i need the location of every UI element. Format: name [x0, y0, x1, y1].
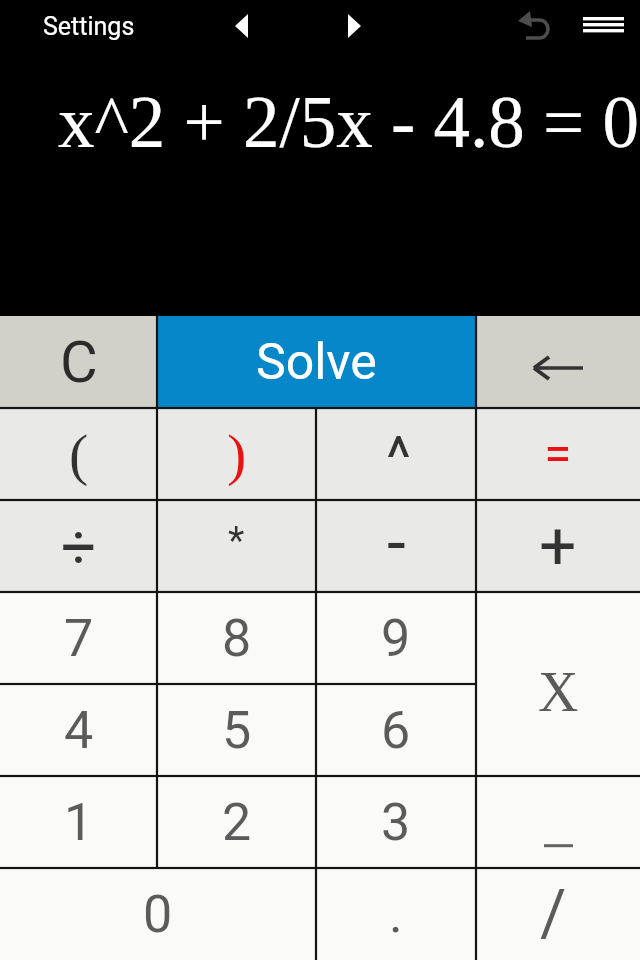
button[interactable]: ÷ [0, 500, 157, 592]
staticText: ÷ [61, 510, 97, 583]
button[interactable] [476, 776, 640, 868]
button[interactable]: X [476, 592, 640, 776]
button[interactable]: 6 [316, 684, 476, 776]
button[interactable]: 2 [157, 776, 316, 868]
staticText: 8 [222, 608, 252, 669]
staticText: 2 [222, 792, 252, 853]
button[interactable]: * [157, 500, 316, 592]
button[interactable]: ) [157, 408, 316, 500]
staticText: = [544, 425, 572, 484]
staticText: Settings [43, 12, 135, 41]
button[interactable] [476, 316, 640, 408]
button[interactable]: ^ [316, 408, 476, 500]
staticText: Solve [256, 333, 377, 392]
staticText: 3 [381, 792, 411, 853]
button[interactable]: Settings [27, 4, 151, 48]
button[interactable]: 4 [0, 684, 157, 776]
staticText: X [538, 661, 579, 723]
staticText: 7 [64, 608, 94, 669]
button[interactable]: ( [0, 408, 157, 500]
button[interactable]: 1 [0, 776, 157, 868]
staticText: ) [227, 422, 247, 486]
button[interactable]: - [316, 500, 476, 592]
staticText: C [60, 328, 98, 396]
button[interactable]: 0 [0, 868, 316, 960]
staticText: x^2 + 2/5x - 4.8 = 0 [58, 82, 639, 163]
button[interactable]: C [0, 316, 157, 408]
button[interactable]: 8 [157, 592, 316, 684]
button[interactable]: 3 [316, 776, 476, 868]
button[interactable]: 9 [316, 592, 476, 684]
staticText: 5 [222, 700, 252, 761]
staticText: 1 [64, 792, 94, 853]
staticText: + [539, 508, 577, 585]
staticText: ( [69, 422, 89, 486]
staticText: 0 [143, 884, 173, 945]
button[interactable]: Solve [157, 316, 476, 408]
button[interactable]: + [476, 500, 640, 592]
button[interactable]: 7 [0, 592, 157, 684]
staticText: ^ [386, 422, 412, 492]
staticText: 4 [64, 700, 94, 761]
staticText: 6 [381, 700, 411, 761]
button[interactable]: / [476, 868, 640, 960]
staticText: . [389, 884, 403, 945]
button[interactable]: = [476, 408, 640, 500]
staticText: - [387, 503, 406, 583]
staticText: / [540, 876, 567, 951]
staticText: 9 [381, 608, 411, 669]
staticText: * [228, 519, 245, 564]
button[interactable]: . [316, 868, 476, 960]
button[interactable]: 5 [157, 684, 316, 776]
